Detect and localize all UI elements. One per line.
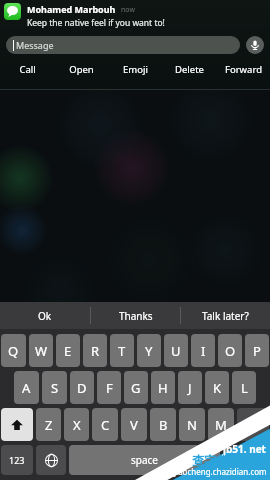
button[interactable]: N [179, 408, 205, 441]
button[interactable]: F [97, 371, 121, 404]
button[interactable]: space [69, 445, 220, 475]
button[interactable]: 123 [1, 445, 33, 475]
staticText: Delete [175, 63, 204, 76]
button[interactable]: G [124, 371, 148, 404]
button[interactable]: Forward [216, 61, 270, 77]
staticText: G [131, 379, 141, 397]
staticText: jiaocheng.chazidian.com [174, 466, 267, 477]
button[interactable]: return [223, 445, 269, 475]
button[interactable]: Dictate message [246, 36, 264, 54]
staticText: Keep the native feel if you want to! [27, 17, 165, 29]
staticText: T [118, 342, 126, 360]
staticText: X [73, 416, 81, 434]
staticText: V [130, 416, 138, 434]
button[interactable]: H [151, 371, 175, 404]
staticText: Emoji [123, 63, 148, 76]
staticText: now [121, 5, 135, 15]
button[interactable]: Emoji [108, 61, 162, 77]
button[interactable]: Y [137, 334, 161, 367]
staticText: D [77, 379, 87, 397]
button[interactable]: R [83, 334, 107, 367]
staticText: S [51, 379, 59, 397]
button[interactable]: M [208, 408, 234, 441]
button[interactable]: W [29, 334, 53, 367]
staticText: U [171, 342, 181, 360]
button[interactable]: Messages [4, 3, 21, 20]
button[interactable]: Open [54, 61, 108, 77]
staticText: K [213, 379, 222, 397]
button[interactable]: Talk later? [181, 302, 270, 329]
staticText: Talk later? [202, 309, 249, 323]
button[interactable]: Backspace [237, 408, 269, 441]
staticText: O [225, 342, 236, 360]
staticText: M [215, 416, 227, 434]
staticText: Forward [225, 63, 262, 76]
button[interactable]: Delete [162, 61, 216, 77]
staticText: I [201, 342, 206, 360]
staticText: L [241, 379, 248, 397]
staticText: P [253, 342, 261, 360]
button[interactable]: X [64, 408, 89, 441]
button[interactable]: Thanks [91, 302, 180, 329]
button[interactable]: K [205, 371, 229, 404]
staticText: Z [45, 416, 53, 434]
button[interactable]: Ok [0, 302, 90, 329]
staticText: Message [16, 39, 54, 51]
button[interactable]: V [121, 408, 147, 441]
staticText: E [64, 342, 72, 360]
button[interactable]: B [150, 408, 176, 441]
staticText: Mohamed Marbouh [27, 3, 116, 15]
staticText: N [187, 416, 197, 434]
button[interactable]: Q [1, 334, 26, 367]
staticText: R [91, 342, 100, 360]
staticText: B [159, 416, 168, 434]
staticText: A [22, 379, 31, 397]
button[interactable]: S [42, 371, 67, 404]
staticText: Call [19, 63, 36, 76]
staticText: W [35, 342, 48, 360]
button[interactable]: Shift [1, 408, 33, 441]
button[interactable]: U [164, 334, 188, 367]
button[interactable]: Message [6, 36, 240, 54]
button[interactable]: Z [36, 408, 61, 441]
button[interactable]: L [232, 371, 256, 404]
staticText: space [131, 453, 158, 467]
staticText: 查字典教程网 [192, 453, 264, 468]
button[interactable]: P [245, 334, 269, 367]
button[interactable]: A [14, 371, 39, 404]
button[interactable]: C [92, 408, 118, 441]
staticText: H [158, 379, 168, 397]
staticText: Ok [38, 309, 52, 323]
button[interactable]: D [70, 371, 94, 404]
button[interactable]: T [110, 334, 134, 367]
staticText: Thanks [119, 309, 153, 323]
button[interactable]: E [56, 334, 80, 367]
staticText: 123 [9, 454, 25, 466]
button[interactable]: I [191, 334, 215, 367]
button[interactable]: J [178, 371, 202, 404]
staticText: jb51. net [223, 442, 266, 456]
staticText: F [106, 379, 113, 397]
staticText: Y [145, 342, 153, 360]
staticText: Q [8, 342, 19, 360]
staticText: C [101, 416, 110, 434]
button[interactable]: Change keyboard [36, 445, 66, 475]
staticText: Open [69, 63, 94, 76]
button[interactable]: Call [0, 61, 54, 77]
staticText: J [188, 379, 192, 397]
button[interactable]: O [218, 334, 242, 367]
